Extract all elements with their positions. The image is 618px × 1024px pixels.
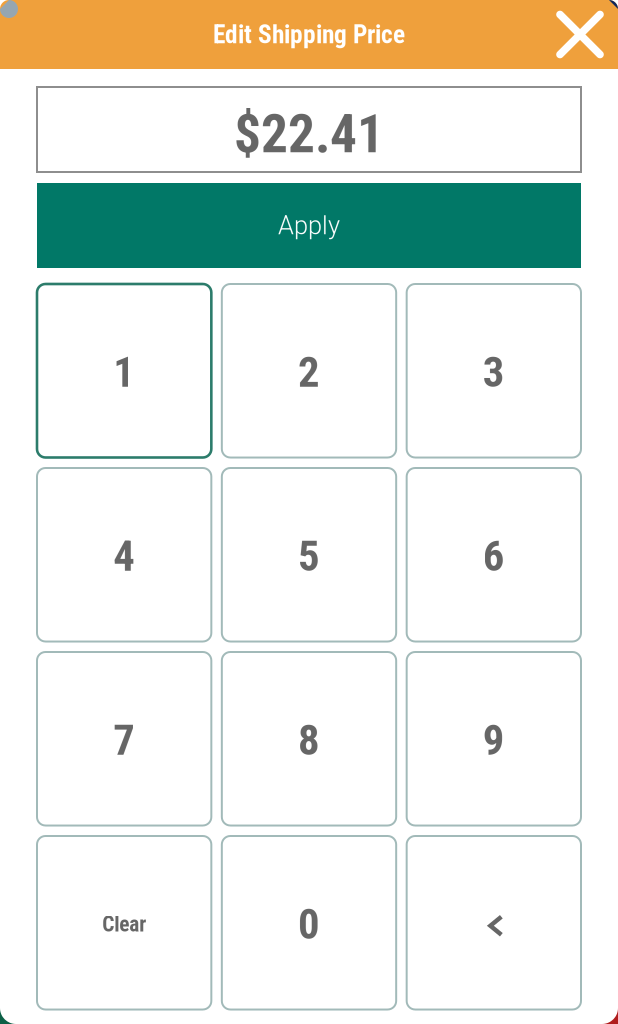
button[interactable]: 5	[222, 468, 396, 641]
staticText: 1	[113, 347, 135, 397]
button[interactable]: 4	[37, 468, 211, 641]
staticText: 3	[483, 347, 505, 397]
button[interactable]: 2	[222, 284, 396, 457]
staticText: 5	[298, 531, 320, 581]
staticText: 8	[298, 715, 320, 765]
button[interactable]: 7	[37, 652, 211, 825]
staticText: 7	[113, 715, 135, 765]
button[interactable]: 8	[222, 652, 396, 825]
staticText: Apply	[278, 211, 340, 240]
button[interactable]: 1	[37, 284, 211, 457]
button[interactable]: 3	[407, 284, 581, 457]
button[interactable]: Clear	[37, 836, 211, 1009]
staticText: $22.41	[234, 103, 384, 165]
staticText: 2	[298, 347, 320, 397]
staticText: Clear	[102, 912, 146, 937]
staticText: Edit Shipping Price	[213, 20, 405, 49]
button[interactable]: Close	[556, 10, 604, 58]
staticText: 4	[113, 531, 135, 581]
button[interactable]: 6	[407, 468, 581, 641]
staticText: 6	[483, 531, 505, 581]
staticText: 0	[298, 899, 320, 949]
staticText: 9	[483, 715, 505, 765]
button[interactable]: 9	[407, 652, 581, 825]
button[interactable]: Apply	[37, 183, 581, 268]
button[interactable]	[407, 836, 581, 1009]
button[interactable]: 0	[222, 836, 396, 1009]
